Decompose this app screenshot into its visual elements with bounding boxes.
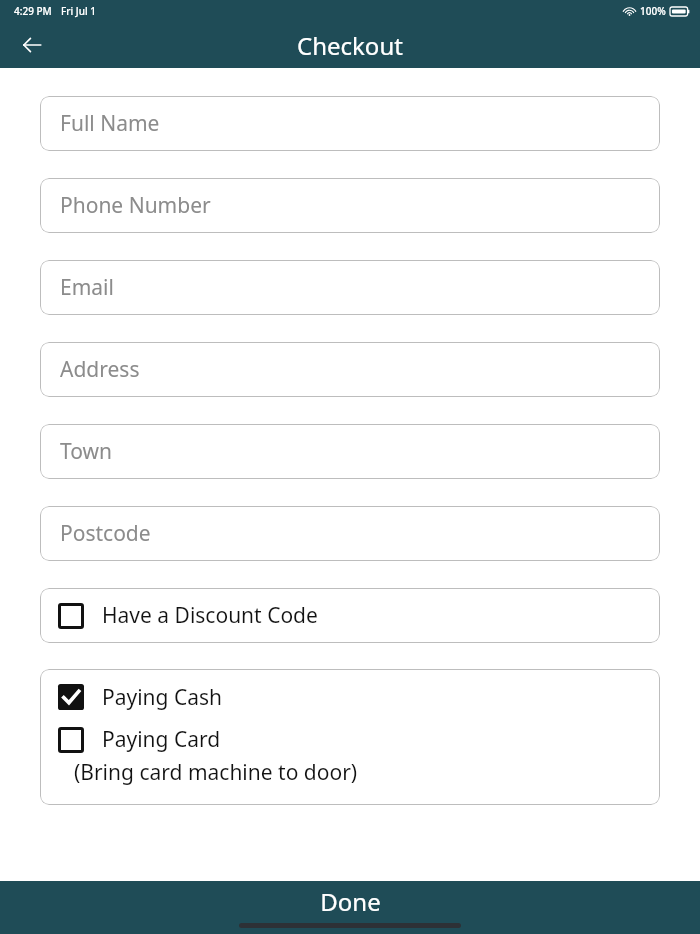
staticText: Fri Jul 1 xyxy=(61,4,96,18)
staticText: Town xyxy=(60,437,112,466)
staticText: 4:29 PM xyxy=(14,4,52,18)
staticText: Checkout xyxy=(297,29,403,62)
button[interactable]: Full Name xyxy=(40,96,660,151)
staticText: Paying Cash xyxy=(102,683,223,712)
staticText: Phone Number xyxy=(60,191,211,220)
button[interactable]: Phone Number xyxy=(40,178,660,233)
button[interactable]: Back xyxy=(12,25,52,65)
button[interactable]: Have a Discount Code xyxy=(40,588,660,643)
button[interactable]: Paying Cash xyxy=(40,669,660,725)
staticText: Address xyxy=(60,355,140,384)
staticText: Have a Discount Code xyxy=(102,601,318,630)
button[interactable]: Paying Card xyxy=(40,725,660,787)
staticText: Full Name xyxy=(60,109,160,138)
staticText: Postcode xyxy=(60,519,151,548)
button[interactable]: Postcode xyxy=(40,506,660,561)
staticText: Paying Card xyxy=(102,725,221,754)
staticText: Done xyxy=(320,885,381,918)
staticText: (Bring card machine to door) xyxy=(74,758,358,787)
staticText: Email xyxy=(60,273,114,302)
button[interactable]: Done xyxy=(0,881,700,921)
button[interactable]: Email xyxy=(40,260,660,315)
staticText: 100% xyxy=(640,4,666,18)
button[interactable]: Town xyxy=(40,424,660,479)
button[interactable]: Address xyxy=(40,342,660,397)
